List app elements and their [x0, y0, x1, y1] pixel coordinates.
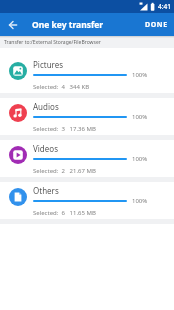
staticText: Videos — [33, 143, 58, 154]
staticText: 100% — [132, 197, 148, 205]
staticText: Selected: 2 21.67 MB — [33, 167, 96, 175]
button[interactable]: Others — [0, 182, 174, 219]
button[interactable]: Videos — [0, 140, 174, 177]
staticText: Transfer to:/External Storage/FileBrowse… — [4, 39, 101, 46]
staticText: Selected: 4 344 KB — [33, 83, 90, 91]
staticText: Selected: 3 17.36 MB — [33, 125, 96, 133]
button[interactable]: Pictures — [0, 56, 174, 93]
staticText: 100% — [132, 155, 148, 163]
staticText: One key transfer — [32, 19, 104, 31]
staticText: Pictures — [33, 59, 64, 70]
staticText: 4:41 — [158, 2, 171, 11]
staticText: DONE — [145, 20, 168, 30]
staticText: 100% — [132, 113, 148, 121]
button[interactable]: DONE — [142, 17, 171, 33]
staticText: Others — [33, 185, 59, 196]
button[interactable]: Audios — [0, 98, 174, 135]
staticText: Selected: 6 11.65 MB — [33, 209, 96, 217]
staticText: 100% — [132, 71, 148, 79]
button[interactable] — [6, 18, 20, 32]
staticText: Audios — [33, 101, 59, 112]
